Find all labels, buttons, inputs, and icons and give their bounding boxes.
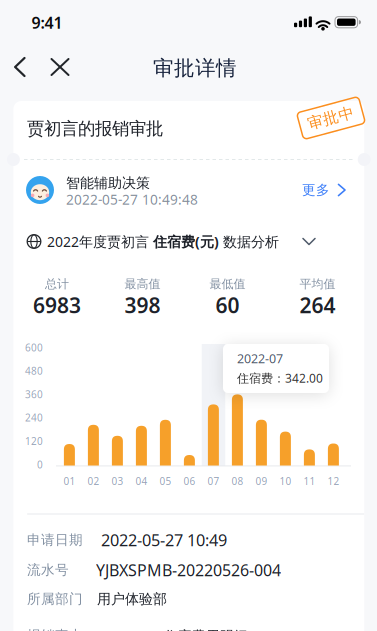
staticText: 12 — [327, 474, 339, 488]
staticText: 01 — [63, 474, 75, 488]
staticText: 0 — [37, 458, 43, 471]
staticText: 04 — [135, 474, 147, 488]
staticText: 06 — [183, 474, 195, 488]
staticText: 平均值 — [299, 276, 335, 291]
staticText: 10 — [279, 474, 291, 488]
staticText: 398 — [124, 291, 160, 319]
staticText: YJBXSPMB-20220526-004 — [96, 559, 281, 581]
button[interactable]: 2022年度贾初言 住宿费(元) 数据分析 — [27, 227, 319, 255]
staticText: 07 — [207, 474, 219, 488]
staticText: 60 — [215, 291, 239, 319]
staticText: 08 — [231, 474, 243, 488]
staticText: 240 — [25, 411, 43, 424]
button[interactable]: 更多 — [302, 175, 352, 205]
staticText: 流水号 — [27, 561, 69, 578]
staticText: 09 — [255, 474, 267, 488]
staticText: 智能辅助决策 — [66, 174, 150, 192]
button[interactable]: 返回 — [1, 48, 37, 84]
staticText: 03 — [111, 474, 123, 488]
staticText: 住宿费：342.00 — [237, 370, 323, 386]
staticText: 最低值 — [209, 276, 245, 291]
staticText: 2022-07 — [237, 350, 283, 367]
staticText: 用户体验部 — [97, 590, 167, 608]
staticText: 11 — [303, 474, 315, 488]
staticText: 贾初言的报销审批 — [27, 118, 163, 140]
staticText: 264 — [299, 291, 335, 319]
staticText: 审批中 — [307, 108, 355, 128]
staticText: 6983 — [33, 291, 81, 319]
staticText: 2022年度贾初言 住宿费(元) 数据分析 — [47, 232, 279, 251]
staticText: 05 — [159, 474, 171, 488]
staticText: 申请日期 — [27, 531, 83, 548]
staticText: 审批详情 — [153, 55, 237, 81]
staticText: 2022-05-27 10:49 — [101, 529, 227, 551]
staticText: 更多 — [302, 181, 330, 198]
staticText: 02 — [87, 474, 99, 488]
staticText: 480 — [25, 364, 43, 378]
staticText: 报销事由 — [27, 627, 83, 631]
button[interactable]: 智能辅助决策 — [13, 171, 303, 209]
staticText: 9:41 — [31, 12, 62, 33]
button[interactable]: 关闭 — [42, 49, 78, 85]
staticText: 600 — [25, 341, 43, 354]
staticText: (住宿费用明细) — [160, 626, 252, 631]
staticText: 所属部门 — [27, 590, 83, 607]
staticText: 2022-05-27 10:49:48 — [66, 190, 198, 209]
staticText: 360 — [25, 387, 43, 401]
staticText: 120 — [25, 434, 43, 448]
staticText: 总计 — [45, 276, 69, 291]
staticText: 最高值 — [124, 276, 160, 291]
